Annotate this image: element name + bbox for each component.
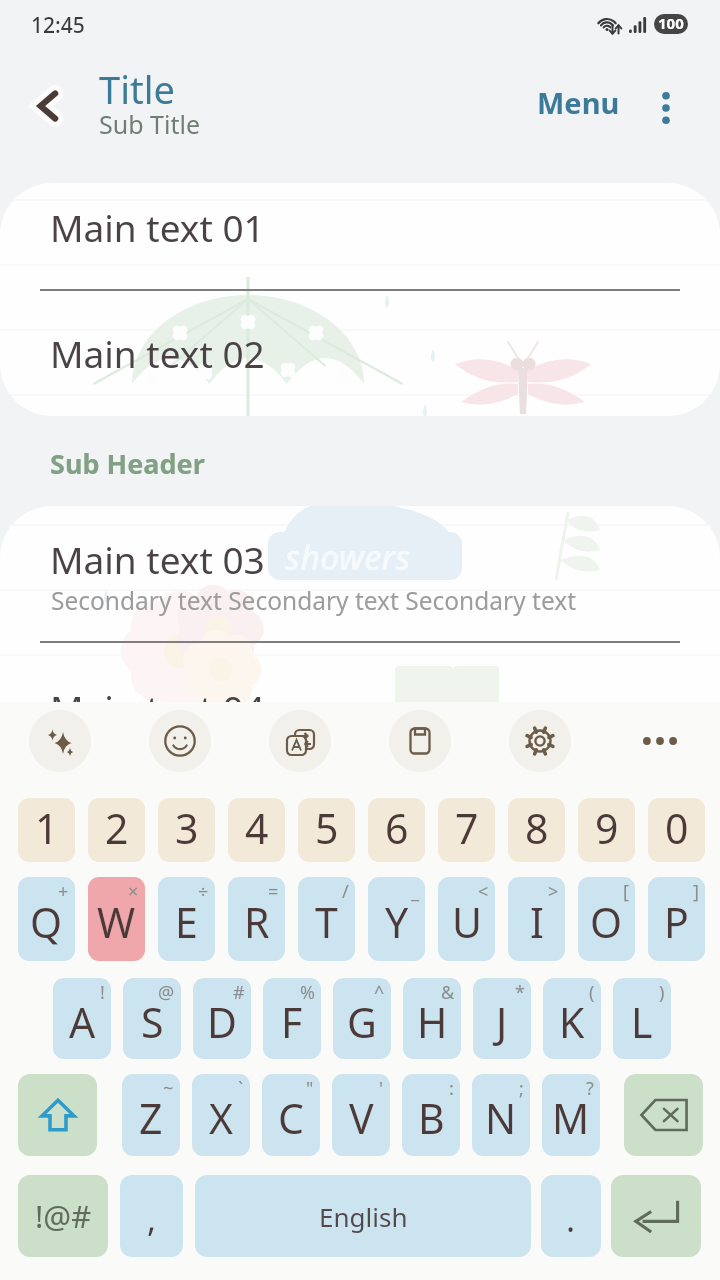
button[interactable]: Clipboard bbox=[389, 710, 451, 772]
button[interactable]: W bbox=[88, 877, 145, 961]
staticText: N bbox=[485, 1090, 517, 1146]
button[interactable]: , bbox=[120, 1175, 183, 1257]
staticText: > bbox=[548, 879, 559, 904]
button[interactable]: 6 bbox=[368, 798, 425, 862]
button[interactable]: Main text 04 bbox=[0, 642, 720, 702]
staticText: ~ bbox=[163, 1076, 174, 1101]
button[interactable]: L bbox=[613, 978, 671, 1059]
staticText: K bbox=[559, 994, 585, 1050]
button[interactable]: 7 bbox=[438, 798, 495, 862]
button[interactable]: P bbox=[648, 877, 705, 961]
button[interactable]: Q bbox=[18, 877, 75, 961]
staticText: ( bbox=[589, 980, 595, 1005]
button[interactable]: Main text 02 bbox=[0, 290, 720, 416]
button[interactable]: N bbox=[472, 1074, 530, 1156]
staticText: ' bbox=[379, 1076, 384, 1101]
button[interactable]: Settings bbox=[509, 710, 571, 772]
button[interactable]: Z bbox=[122, 1074, 180, 1156]
button[interactable]: K bbox=[543, 978, 601, 1059]
button[interactable]: 8 bbox=[508, 798, 565, 862]
button[interactable]: Main text 01 bbox=[0, 183, 720, 290]
staticText: S bbox=[141, 994, 164, 1050]
button[interactable]: 3 bbox=[158, 798, 215, 862]
button[interactable]: M bbox=[542, 1074, 600, 1156]
staticText: % bbox=[300, 980, 315, 1005]
staticText: English bbox=[319, 1199, 408, 1234]
button[interactable]: V bbox=[332, 1074, 390, 1156]
staticText: & bbox=[441, 980, 455, 1005]
button[interactable]: R bbox=[228, 877, 285, 961]
staticText: I bbox=[530, 894, 544, 950]
button[interactable]: Main text 03 bbox=[0, 506, 720, 642]
button[interactable]: D bbox=[193, 978, 251, 1059]
button[interactable]: Shift bbox=[18, 1074, 97, 1156]
staticText: 3 bbox=[175, 800, 199, 856]
staticText: Sub Header bbox=[50, 445, 205, 482]
staticText: : bbox=[449, 1076, 454, 1101]
button[interactable]: U bbox=[438, 877, 495, 961]
staticText: T bbox=[315, 894, 338, 950]
button[interactable]: 1 bbox=[18, 798, 75, 862]
button[interactable]: F bbox=[263, 978, 321, 1059]
button[interactable]: !@# bbox=[18, 1175, 108, 1257]
staticText: A bbox=[69, 994, 96, 1050]
staticText: = bbox=[268, 879, 279, 904]
staticText: Y bbox=[385, 894, 409, 950]
staticText: F bbox=[281, 994, 303, 1050]
button[interactable]: 2 bbox=[88, 798, 145, 862]
staticText: Z bbox=[139, 1090, 163, 1146]
button[interactable]: 0 bbox=[648, 798, 705, 862]
staticText: Main text 03 bbox=[50, 534, 265, 584]
staticText: ; bbox=[519, 1076, 524, 1101]
staticText: V bbox=[349, 1090, 374, 1146]
button[interactable]: . bbox=[541, 1175, 601, 1257]
staticText: E bbox=[175, 894, 198, 950]
button[interactable]: C bbox=[262, 1074, 320, 1156]
button[interactable]: More keyboard options bbox=[629, 710, 691, 772]
staticText: Q bbox=[30, 894, 63, 950]
staticText: Main text 02 bbox=[50, 328, 265, 378]
button[interactable]: S bbox=[123, 978, 181, 1059]
staticText: ? bbox=[586, 1076, 594, 1101]
staticText: 5 bbox=[315, 800, 339, 856]
button[interactable]: O bbox=[578, 877, 635, 961]
staticText: P bbox=[664, 894, 689, 950]
staticText: 0 bbox=[665, 800, 689, 856]
button[interactable]: Backspace bbox=[624, 1074, 703, 1156]
button[interactable]: Y bbox=[368, 877, 425, 961]
button[interactable]: Navigate up bbox=[14, 74, 78, 138]
staticText: [ bbox=[623, 879, 629, 904]
button[interactable]: 9 bbox=[578, 798, 635, 862]
staticText: ] bbox=[693, 879, 699, 904]
button[interactable]: J bbox=[473, 978, 531, 1059]
button[interactable]: T bbox=[298, 877, 355, 961]
button[interactable]: H bbox=[403, 978, 461, 1059]
staticText: Sub Title bbox=[99, 107, 200, 141]
staticText: / bbox=[342, 879, 349, 904]
button[interactable]: AI suggestions bbox=[29, 710, 91, 772]
button[interactable]: A bbox=[53, 978, 111, 1059]
button[interactable]: E bbox=[158, 877, 215, 961]
button[interactable]: X bbox=[192, 1074, 250, 1156]
staticText: ^ bbox=[374, 980, 385, 1005]
button[interactable]: B bbox=[402, 1074, 460, 1156]
staticText: showers bbox=[285, 534, 411, 580]
button[interactable]: 4 bbox=[228, 798, 285, 862]
staticText: 6 bbox=[385, 800, 409, 856]
staticText: ` bbox=[238, 1076, 244, 1101]
button[interactable]: English bbox=[195, 1175, 531, 1257]
button[interactable]: Emoji bbox=[149, 710, 211, 772]
staticText: < bbox=[478, 879, 489, 904]
button[interactable]: I bbox=[508, 877, 565, 961]
button[interactable]: G bbox=[333, 978, 391, 1059]
staticText: Secondary text Secondary text Secondary … bbox=[51, 584, 577, 617]
staticText: Main text 01 bbox=[50, 202, 265, 252]
button[interactable]: 5 bbox=[298, 798, 355, 862]
button[interactable]: Enter bbox=[611, 1175, 701, 1257]
button[interactable]: More options bbox=[640, 82, 692, 134]
staticText: ) bbox=[659, 980, 665, 1005]
staticText: R bbox=[244, 894, 270, 950]
button[interactable]: Translate bbox=[269, 710, 331, 772]
staticText: J bbox=[496, 994, 508, 1050]
button[interactable]: Menu bbox=[537, 83, 620, 122]
